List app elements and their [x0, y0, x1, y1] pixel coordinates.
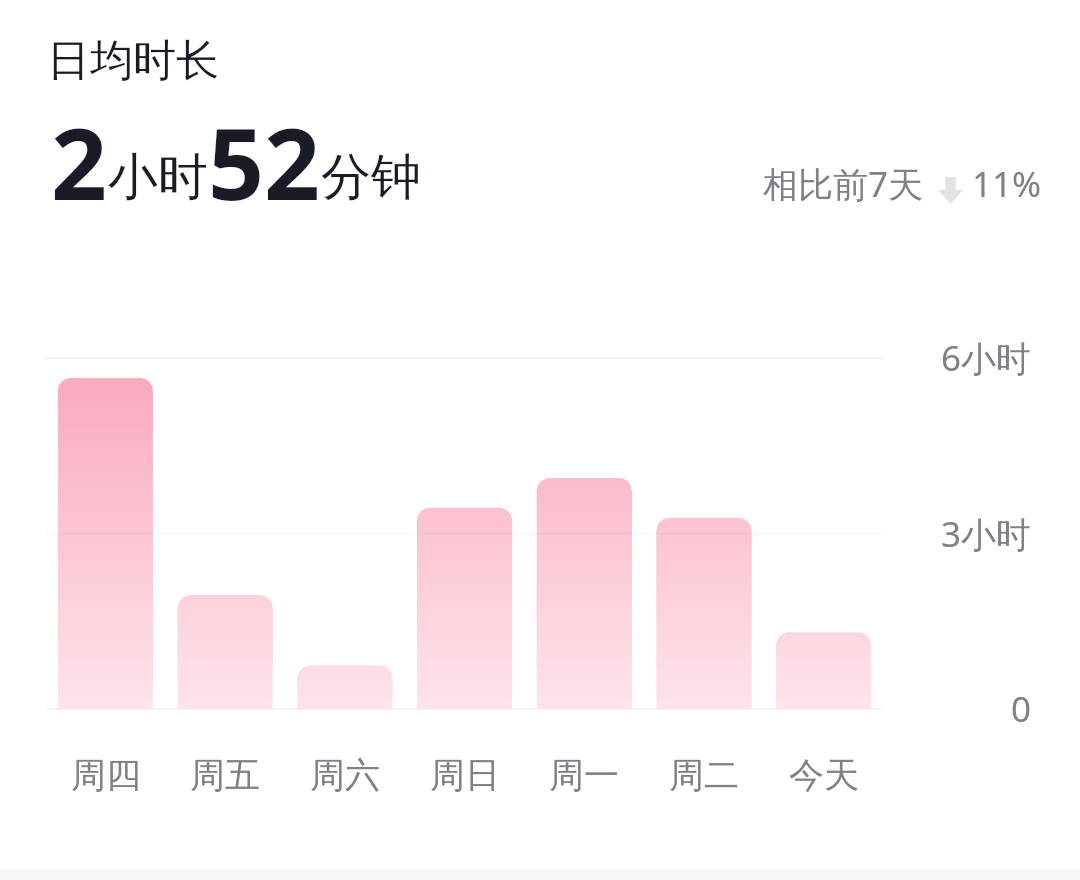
staticText: 2	[51, 95, 108, 228]
staticText: 周六	[310, 753, 380, 797]
staticText: 周日	[430, 753, 500, 797]
button[interactable]: 2	[51, 95, 421, 228]
button[interactable]: 今天	[764, 358, 884, 800]
staticText: 11%	[972, 160, 1042, 208]
other: Decrease	[938, 177, 963, 204]
staticText: 6小时	[941, 334, 1032, 382]
button[interactable]: 相比前7天	[763, 159, 1042, 209]
staticText: 周五	[190, 753, 260, 797]
staticText: 周一	[549, 753, 619, 797]
button[interactable]: 周日	[405, 358, 525, 800]
staticText: 日均时长	[47, 34, 219, 88]
button[interactable]: 周四	[46, 358, 166, 800]
button[interactable]: 周五	[165, 358, 285, 800]
staticText: 52	[208, 95, 321, 228]
staticText: 周四	[71, 753, 141, 797]
staticText: 今天	[789, 753, 859, 797]
button[interactable]: 周六	[285, 358, 405, 800]
button[interactable]: 周一	[524, 358, 644, 800]
staticText: 相比前7天	[763, 160, 924, 208]
button[interactable]: 周二	[644, 358, 764, 800]
staticText: 3小时	[941, 510, 1032, 558]
staticText: 小时	[108, 146, 208, 209]
staticText: 0	[1011, 685, 1032, 733]
staticText: 分钟	[321, 146, 421, 209]
staticText: 周二	[669, 753, 739, 797]
